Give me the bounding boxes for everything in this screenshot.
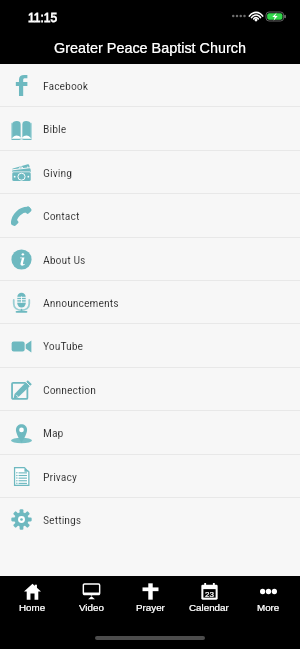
button[interactable]: Settings [0, 498, 300, 541]
staticText: YouTube [43, 339, 84, 353]
button[interactable]: Home [5, 583, 59, 613]
staticText: Settings [43, 513, 82, 527]
staticText: Connection [43, 383, 96, 397]
staticText: Calendar [189, 602, 229, 613]
button[interactable]: Map [0, 411, 300, 455]
button[interactable]: Contact [0, 194, 300, 238]
staticText: 11:15 [28, 11, 58, 24]
staticText: About Us [43, 253, 86, 267]
staticText: Facebook [43, 79, 89, 93]
staticText: Giving [43, 166, 72, 180]
staticText: Map [43, 426, 64, 440]
button[interactable]: YouTube [0, 324, 300, 368]
staticText: Home [19, 602, 46, 613]
button[interactable]: Facebook [0, 64, 300, 107]
staticText: 23 [205, 590, 214, 599]
staticText: Prayer [136, 602, 165, 613]
staticText: Privacy [43, 470, 77, 484]
button[interactable]: Video [64, 583, 118, 613]
button[interactable]: 23 [182, 583, 236, 613]
staticText: Greater Peace Baptist Church [54, 40, 246, 56]
staticText: Announcements [43, 296, 119, 310]
button[interactable]: Bible [0, 107, 300, 151]
button[interactable]: Connection [0, 368, 300, 411]
button[interactable]: Announcements [0, 281, 300, 324]
staticText: Bible [43, 122, 67, 136]
button[interactable]: Prayer [123, 583, 177, 613]
button[interactable]: Privacy [0, 455, 300, 498]
button[interactable]: About Us [0, 238, 300, 281]
button[interactable]: Giving [0, 151, 300, 194]
staticText: Contact [43, 209, 80, 223]
staticText: More [257, 602, 280, 613]
button[interactable]: More [241, 583, 295, 613]
staticText: Video [79, 602, 104, 613]
